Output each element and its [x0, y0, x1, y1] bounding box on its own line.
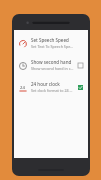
button[interactable]: Set Speech Speed: [14, 32, 88, 54]
button[interactable]: 24: [14, 76, 88, 98]
button[interactable]: Disabled checkbox: [74, 59, 86, 71]
staticText: Set clock format to 24 hour: [31, 88, 74, 93]
button[interactable]: Enabled checkbox: [74, 81, 86, 93]
staticText: Set Speech Speed: [31, 37, 69, 43]
staticText: 24: [20, 85, 25, 91]
staticText: 24 hour clock: [31, 81, 60, 87]
button[interactable]: Show second hand: [14, 54, 88, 76]
staticText: Set Text To Speech Speed: [31, 44, 74, 49]
staticText: Show second hand: [31, 59, 72, 65]
staticText: Show second hand in clock: [31, 66, 74, 71]
